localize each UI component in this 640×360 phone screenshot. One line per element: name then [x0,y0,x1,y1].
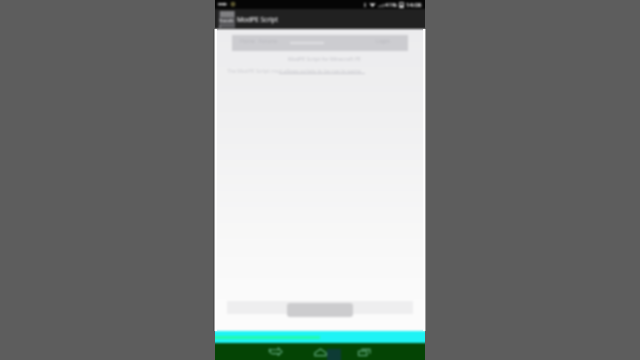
button[interactable]: Home Forums [232,35,408,51]
button[interactable]: App icon [219,11,235,28]
button[interactable] [287,303,353,317]
staticText: The ModPE Script mod allows scripts to b… [227,67,361,74]
button[interactable]: Recent apps [349,343,380,360]
staticText: 14:08 [406,1,422,9]
button[interactable]: Back [260,343,291,360]
button[interactable]: Home [305,343,336,360]
staticText: ModPE Script for Minecraft PE [288,55,361,62]
staticText: Transfer [219,18,235,28]
staticText: ModPE Script [237,15,279,24]
staticText: 41% [385,1,397,9]
